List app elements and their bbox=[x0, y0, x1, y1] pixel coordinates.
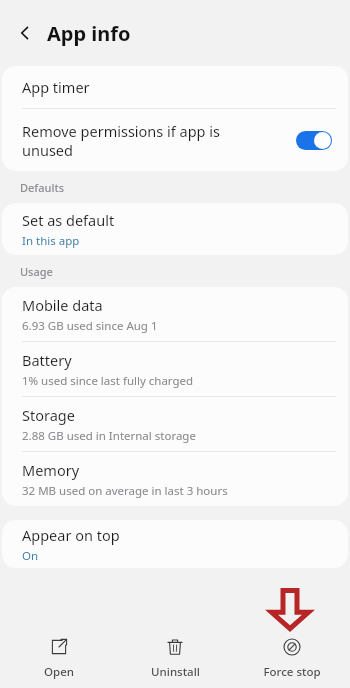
staticText: Battery bbox=[22, 350, 72, 370]
staticText: Mobile data bbox=[22, 295, 103, 315]
staticText: Set as default bbox=[22, 210, 115, 230]
staticText: Uninstall bbox=[151, 664, 200, 680]
staticText: 6.93 GB used since Aug 1 bbox=[22, 318, 158, 334]
staticText: App timer bbox=[22, 77, 90, 97]
button[interactable]: Force stop bbox=[234, 628, 350, 688]
button[interactable]: Set as default bbox=[2, 203, 348, 255]
staticText: Remove permissions if app is unused bbox=[22, 121, 252, 160]
staticText: 1% used since last fully charged bbox=[22, 373, 194, 389]
staticText: Defaults bbox=[20, 180, 64, 195]
staticText: 2.88 GB used in Internal storage bbox=[22, 428, 196, 444]
staticText: Storage bbox=[22, 405, 75, 425]
button[interactable]: Back bbox=[10, 18, 40, 48]
button[interactable]: Uninstall bbox=[117, 628, 233, 688]
staticText: Open bbox=[44, 664, 74, 680]
staticText: Memory bbox=[22, 460, 80, 480]
staticText: In this app bbox=[22, 233, 80, 249]
button[interactable]: Remove permissions if app is unused bbox=[2, 109, 348, 171]
button[interactable]: App timer bbox=[2, 66, 348, 108]
staticText: 32 MB used on average in last 3 hours bbox=[22, 483, 228, 499]
button[interactable]: Memory bbox=[2, 452, 348, 506]
staticText: Usage bbox=[20, 264, 53, 279]
button[interactable]: Battery bbox=[2, 342, 348, 396]
staticText: Appear on top bbox=[22, 525, 120, 545]
staticText: On bbox=[22, 548, 39, 564]
staticText: App info bbox=[47, 20, 131, 47]
button[interactable]: Open bbox=[1, 628, 117, 688]
button[interactable]: Appear on top bbox=[2, 520, 348, 568]
other: Remove permissions toggle, on bbox=[296, 131, 332, 150]
button[interactable]: Mobile data bbox=[2, 287, 348, 341]
button[interactable]: Storage bbox=[2, 397, 348, 451]
staticText: Force stop bbox=[263, 664, 321, 680]
